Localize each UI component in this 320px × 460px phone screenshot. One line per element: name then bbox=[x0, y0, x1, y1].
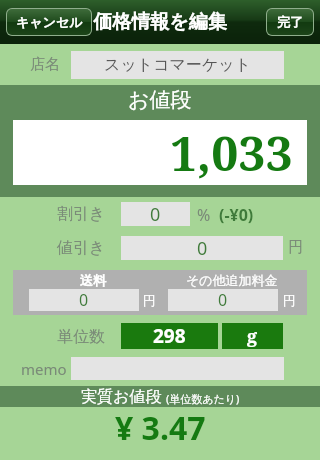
staticText: 298 bbox=[153, 323, 186, 349]
staticText: (-¥0) bbox=[219, 204, 254, 226]
staticText: お値段 bbox=[128, 87, 192, 113]
staticText: memo bbox=[21, 359, 67, 379]
button[interactable]: 完了 bbox=[267, 9, 313, 35]
staticText: 店名 bbox=[30, 55, 60, 74]
staticText: キャンセル bbox=[16, 14, 83, 30]
staticText: 0 bbox=[197, 236, 208, 260]
staticText: 円 bbox=[283, 292, 296, 308]
staticText: % bbox=[197, 204, 211, 226]
button[interactable]: 0 bbox=[29, 289, 139, 311]
staticText: ¥ 3.47 bbox=[115, 406, 206, 446]
button[interactable]: スットコマーケット bbox=[71, 51, 284, 79]
button[interactable]: 0 bbox=[168, 289, 278, 311]
staticText: 円 bbox=[288, 238, 303, 257]
button[interactable]: g bbox=[222, 323, 283, 349]
button[interactable]: 298 bbox=[121, 323, 218, 349]
staticText: (単位数あたり) bbox=[166, 391, 240, 406]
staticText: 0 bbox=[79, 289, 89, 311]
staticText: 割引き bbox=[57, 204, 106, 224]
staticText: 1,033 bbox=[170, 120, 293, 185]
staticText: 実質お値段 bbox=[81, 387, 162, 407]
staticText: 0 bbox=[150, 202, 161, 226]
staticText: 送料 bbox=[80, 272, 106, 288]
staticText: 円 bbox=[143, 292, 156, 308]
button[interactable]: 1,033 bbox=[13, 120, 307, 185]
staticText: 0 bbox=[218, 289, 228, 311]
button[interactable]: キャンセル bbox=[7, 9, 91, 35]
staticText: スットコマーケット bbox=[104, 55, 251, 75]
staticText: 価格情報を編集 bbox=[93, 10, 227, 34]
button[interactable]: 0 bbox=[121, 202, 190, 226]
button[interactable]: 0 bbox=[121, 236, 283, 260]
staticText: 単位数 bbox=[57, 327, 105, 347]
staticText: 完了 bbox=[277, 14, 303, 30]
staticText: その他追加料金 bbox=[186, 272, 278, 288]
staticText: 値引き bbox=[57, 238, 106, 258]
staticText: g bbox=[247, 324, 258, 349]
